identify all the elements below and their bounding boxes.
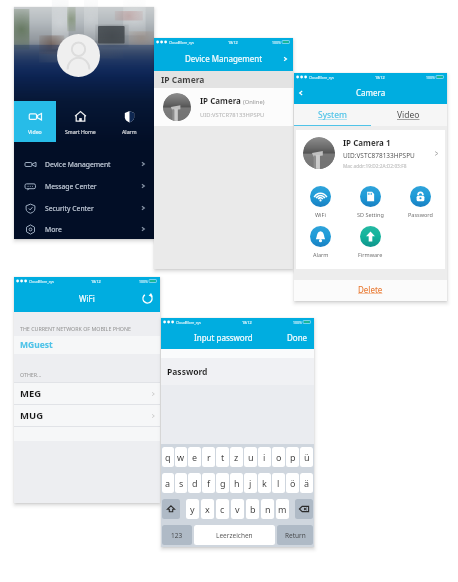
button[interactable]: q [162,447,174,467]
button[interactable]: d [188,473,201,493]
staticText: 18:12 [228,40,238,45]
button[interactable]: b [246,499,259,519]
staticText: h [234,477,240,489]
staticText: ä [304,477,310,489]
button[interactable]: Password [395,186,445,218]
button[interactable]: l [272,473,285,493]
button[interactable]: Done [287,332,314,343]
staticText: u [248,451,254,463]
button[interactable]: e [188,447,201,467]
button[interactable]: ä [300,473,313,493]
button[interactable]: r [202,447,215,467]
staticText: y [190,503,195,515]
staticText: CloudMore_sys [309,75,334,80]
staticText: g [220,477,226,489]
button[interactable]: Smart Home [56,101,105,142]
button[interactable]: u [244,447,257,467]
staticText: MGuest [20,339,53,351]
button[interactable]: MUG [14,405,160,426]
button[interactable]: 123 [162,525,192,545]
staticText: Video [28,128,42,135]
staticText: Leerzeichen [216,531,253,540]
staticText: s [179,477,184,489]
staticText: 100% [272,40,281,45]
staticText: t [221,451,225,463]
button[interactable]: s [175,473,187,493]
button[interactable]: n [261,499,274,519]
staticText: CloudMore_sys [169,40,194,45]
button[interactable]: Firmware [345,226,395,258]
button[interactable]: Delete [295,499,313,519]
button[interactable]: ü [300,447,313,467]
button[interactable]: a [162,473,174,493]
button[interactable]: Back [294,90,304,96]
button[interactable]: Leerzeichen [194,525,275,545]
button[interactable]: x [201,499,214,519]
button[interactable]: Delete [294,280,447,301]
button[interactable]: o [272,447,285,467]
staticText: SD Setting [357,211,384,218]
staticText: i [263,451,266,463]
staticText: w [177,451,185,463]
button[interactable]: y [186,499,199,519]
staticText: (Online) [243,98,265,106]
button[interactable]: IP Camera [154,88,293,126]
button[interactable]: Add [282,56,293,62]
staticText: Input password [194,332,253,343]
button[interactable]: SD Setting [345,186,395,218]
button[interactable]: v [231,499,244,519]
button[interactable]: c [216,499,229,519]
staticText: 18:12 [91,279,101,284]
button[interactable]: h [230,473,243,493]
staticText: a [165,477,171,489]
staticText: UID:VSTC878133HPSPU [343,151,415,160]
button[interactable]: p [286,447,299,467]
staticText: Device Management [45,160,111,169]
staticText: Video [397,109,420,121]
button[interactable]: Refresh [142,293,160,304]
button[interactable]: t [216,447,229,467]
staticText: ö [290,477,296,489]
button[interactable]: Video [370,104,447,126]
staticText: WiFi [315,211,326,218]
button[interactable]: WiFi [296,186,345,218]
staticText: f [207,477,211,489]
staticText: m [278,503,287,515]
button[interactable]: j [244,473,257,493]
button[interactable]: MEG [14,383,160,404]
staticText: Password [408,211,433,218]
button[interactable]: w [175,447,187,467]
staticText: r [207,451,211,463]
staticText: 100% [293,320,302,325]
button[interactable]: Alarm [105,101,154,142]
button[interactable]: Shift [162,499,180,519]
button[interactable]: MGuest [14,336,160,354]
button[interactable]: i [258,447,271,467]
staticText: WiFi [79,293,95,304]
staticText: j [249,477,252,489]
staticText: z [234,451,239,463]
staticText: Camera [356,87,386,98]
staticText: IP Camera [200,95,241,106]
button[interactable]: Alarm [296,226,345,258]
staticText: Message Center [45,182,97,191]
button[interactable]: m [276,499,289,519]
button[interactable]: f [202,473,215,493]
button[interactable]: g [216,473,229,493]
button[interactable]: k [258,473,271,493]
button[interactable]: z [230,447,243,467]
button[interactable]: More [14,219,154,239]
button[interactable]: Device Management [14,153,154,175]
staticText: CloudMore_sys [29,279,54,284]
button[interactable]: IP Camera 1 [296,130,445,176]
button[interactable]: Return [277,525,313,545]
staticText: Delete [358,284,383,295]
button[interactable]: ö [286,473,299,493]
button[interactable]: Security Center [14,197,154,219]
staticText: System [318,109,347,121]
staticText: OTHER... [20,371,42,378]
button[interactable]: Message Center [14,175,154,197]
button[interactable]: Video [14,101,56,142]
button[interactable]: System [294,104,370,126]
staticText: d [192,477,198,489]
